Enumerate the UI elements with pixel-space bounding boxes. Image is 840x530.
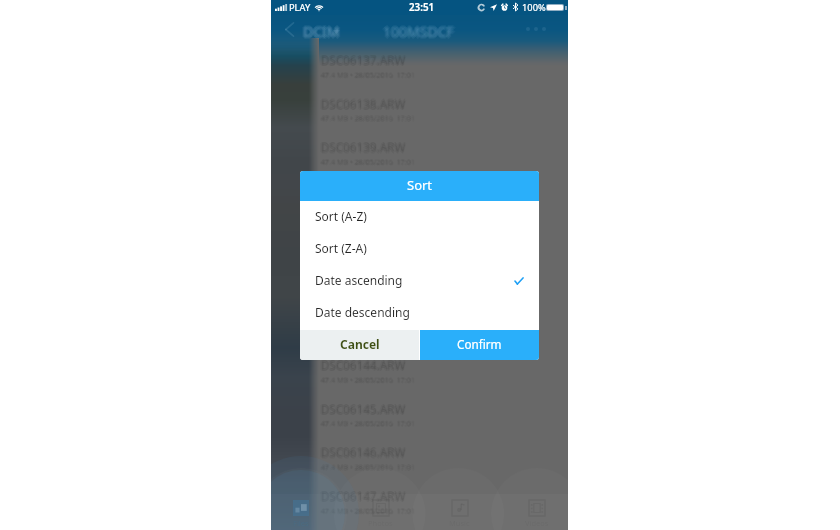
staticText: 47.4 MB • 28/05/2016 17:01 — [320, 70, 415, 80]
staticText: DSC06138.ARW — [321, 97, 406, 113]
staticText: 47.4 MB • 28/05/2016 17:01 — [321, 199, 416, 209]
staticText: 47.4 MB • 28/05/2016 17:01 — [320, 200, 415, 210]
staticText: DCIM — [302, 23, 339, 42]
staticText: 47.4 MB • 28/05/2016 17:01 — [321, 506, 416, 516]
staticText: DSC06145.ARW — [320, 400, 405, 416]
staticText: 47.4 MB • 28/05/2016 17:01 — [321, 463, 416, 473]
button[interactable]: Confirm — [420, 330, 539, 360]
staticText: 47.4 MB • 28/05/2016 17:01 — [321, 374, 416, 384]
button[interactable]: Sort — [300, 171, 539, 201]
staticText: DSC06145.ARW — [321, 401, 406, 417]
staticText: 47.4 MB • 28/05/2016 17:01 — [320, 331, 415, 341]
staticText: DSC06144.ARW — [321, 356, 406, 372]
button[interactable]: Sort (A-Z) — [300, 201, 539, 233]
staticText: DSC06137.ARW — [320, 53, 405, 69]
staticText: DSC06138.ARW — [321, 94, 406, 110]
staticText: 100MSDCF — [383, 20, 454, 39]
staticText: DSC06143.ARW — [321, 315, 406, 331]
button[interactable]: Files — [271, 494, 338, 530]
staticText: 47.4 MB • 28/05/2016 17:01 — [321, 71, 416, 81]
staticText: 47.4 MB • 28/05/2016 17:01 — [321, 70, 416, 80]
staticText: 47.4 MB • 28/05/2016 17:01 — [321, 113, 416, 123]
staticText: 47.4 MB • 28/05/2016 17:01 — [321, 376, 416, 386]
staticText: DSC06139.ARW — [322, 139, 407, 155]
staticText: 47.4 MB • 28/05/2016 17:01 — [320, 462, 415, 472]
staticText: 47.4 MB • 28/05/2016 17:01 — [320, 461, 415, 471]
staticText: DSC06137.ARW — [322, 52, 407, 68]
staticText: DCIM — [303, 20, 340, 39]
staticText: 100MSDCF — [383, 24, 454, 43]
staticText: DSC06146.ARW — [321, 446, 406, 462]
staticText: 100% — [522, 1, 546, 14]
staticText: 47.4 MB • 28/05/2016 17:01 — [321, 114, 416, 124]
staticText: Cancel — [340, 336, 380, 352]
staticText: 47.4 MB • 28/05/2016 17:01 — [321, 418, 416, 428]
button[interactable]: Date ascending — [300, 265, 539, 297]
staticText: 47.4 MB • 28/05/2016 17:01 — [321, 506, 416, 516]
staticText: DSC06142.ARW — [321, 271, 406, 287]
staticText: DSC06139.ARW — [321, 140, 406, 156]
staticText: 47.4 MB • 28/05/2016 17:01 — [320, 156, 415, 166]
staticText: 47.4 MB • 28/05/2016 17:01 — [322, 200, 417, 210]
staticText: 47.4 MB • 28/05/2016 17:01 — [322, 506, 417, 516]
staticText: DSC06145.ARW — [321, 402, 406, 418]
staticText: 47.4 MB • 28/05/2016 17:01 — [321, 157, 416, 167]
staticText: DSC06146.ARW — [319, 444, 404, 460]
staticText: 47.4 MB • 28/05/2016 17:01 — [321, 112, 416, 122]
staticText: DCIM — [304, 23, 341, 42]
staticText: 47.4 MB • 28/05/2016 17:01 — [321, 287, 416, 297]
staticText: 47.4 MB • 28/05/2016 17:01 — [321, 332, 416, 342]
staticText: Date ascending — [315, 272, 403, 288]
staticText: 23:51 — [409, 1, 435, 14]
button[interactable]: Date descending — [300, 297, 539, 329]
staticText: 100MSDCF — [384, 21, 455, 40]
staticText: DSC06145.ARW — [321, 400, 406, 416]
staticText: DSC06144.ARW — [319, 357, 404, 373]
button[interactable]: Photos — [343, 494, 417, 530]
button[interactable]: Cancel — [300, 330, 419, 360]
staticText: DSC06138.ARW — [321, 95, 406, 111]
staticText: 47.4 MB • 28/05/2016 17:01 — [321, 375, 416, 385]
staticText: DSC06147.ARW — [322, 488, 407, 504]
staticText: DSC06137.ARW — [321, 53, 406, 69]
button[interactable]: Sort (Z-A) — [300, 233, 539, 265]
staticText: DCIM — [304, 21, 341, 40]
staticText: DSC06143.ARW — [322, 314, 407, 330]
staticText: 47.4 MB • 28/05/2016 17:01 — [320, 374, 415, 384]
staticText: DSC06143.ARW — [321, 314, 406, 330]
staticText: 100MSDCF — [383, 22, 454, 41]
staticText: 47.4 MB • 28/05/2016 17:01 — [321, 374, 416, 384]
staticText: DCIM — [301, 22, 338, 41]
staticText: DSC06143.ARW — [321, 315, 406, 331]
staticText: 47.4 MB • 28/05/2016 17:01 — [322, 70, 417, 80]
staticText: DSC06137.ARW — [321, 53, 406, 69]
staticText: DSC06144.ARW — [321, 357, 406, 373]
staticText: DSC06143.ARW — [320, 315, 405, 331]
staticText: DSC06146.ARW — [321, 443, 406, 459]
staticText: DSC06139.ARW — [321, 138, 406, 154]
staticText: DSC06146.ARW — [322, 444, 407, 460]
staticText: 47.4 MB • 28/05/2016 17:01 — [321, 200, 416, 210]
staticText: 47.4 MB • 28/05/2016 17:01 — [320, 114, 415, 124]
staticText: 47.4 MB • 28/05/2016 17:01 — [321, 419, 416, 429]
staticText: 47.4 MB • 28/05/2016 17:01 — [320, 332, 415, 342]
staticText: 47.4 MB • 28/05/2016 17:01 — [320, 200, 415, 210]
staticText: DCIM — [303, 24, 340, 43]
staticText: Sort (A-Z) — [315, 208, 367, 224]
staticText: 100MSDCF — [384, 23, 455, 42]
staticText: DCIM — [302, 21, 339, 40]
staticText: DSC06146.ARW — [321, 443, 406, 459]
